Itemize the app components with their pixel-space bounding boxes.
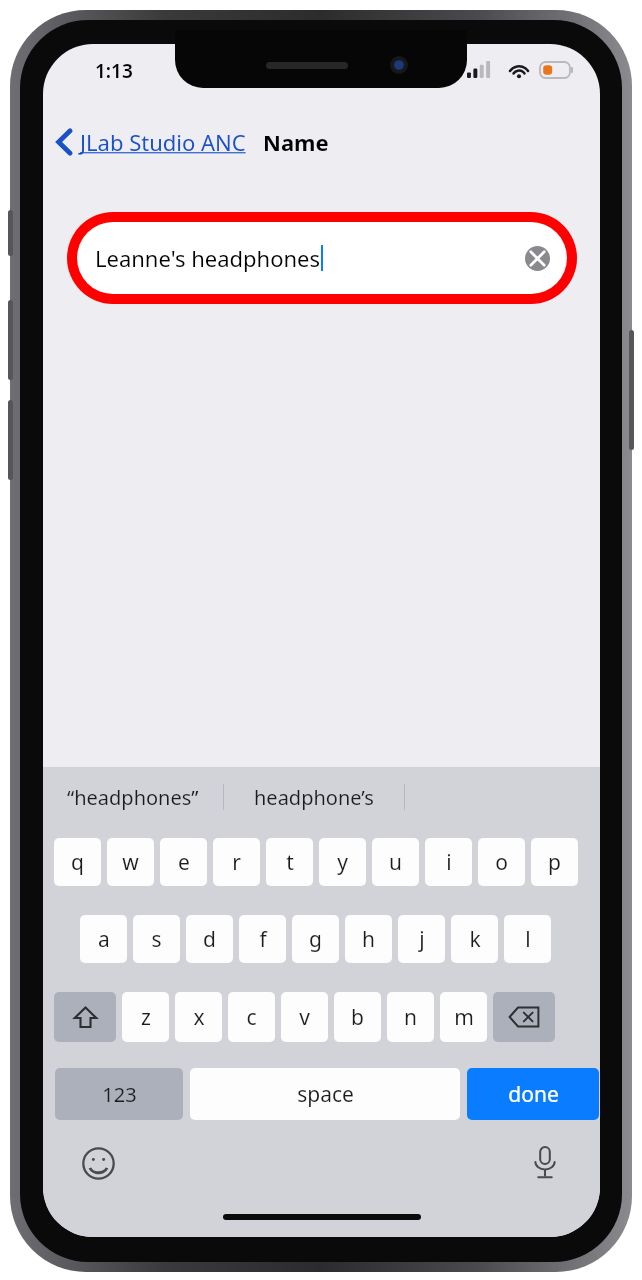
staticText: m [454,1003,474,1032]
staticText: j [419,925,425,954]
staticText: a [98,925,110,954]
button[interactable]: i [425,838,472,886]
staticText: n [404,1003,417,1032]
button[interactable]: h [345,915,392,963]
button[interactable]: q [54,838,101,886]
staticText: h [362,925,375,954]
staticText: p [548,848,561,877]
staticText: t [286,848,294,877]
button[interactable]: d [186,915,233,963]
staticText: headphone’s [254,784,374,811]
staticText: JLab Studio ANC [80,127,246,157]
button[interactable]: “headphones” [43,767,223,827]
button[interactable]: u [372,838,419,886]
button[interactable]: j [398,915,445,963]
button[interactable]: x [175,992,222,1042]
button[interactable]: m [440,992,487,1042]
staticText: 123 [102,1081,137,1108]
button[interactable]: e [160,838,207,886]
staticText: w [122,848,139,877]
button[interactable]: z [122,992,169,1042]
staticText: r [232,848,241,877]
staticText: f [259,925,267,954]
staticText: Name [263,127,329,157]
button[interactable]: a [80,915,127,963]
staticText: q [71,848,84,877]
button[interactable]: done [467,1068,599,1120]
staticText: o [495,848,508,877]
button[interactable]: p [531,838,578,886]
staticText: v [299,1003,310,1032]
button[interactable]: headphone’s [224,767,404,827]
button[interactable]: Clear text [521,242,553,274]
staticText: b [351,1003,364,1032]
button[interactable]: t [266,838,313,886]
button[interactable]: 123 [55,1068,183,1120]
staticText: Leanne's headphones [95,243,321,273]
staticText: done [508,1080,559,1109]
staticText: k [469,925,481,954]
staticText: 1:13 [95,58,133,84]
staticText: d [203,925,216,954]
button[interactable]: space [190,1068,460,1120]
button[interactable]: Leanne's headphones [77,222,567,294]
button[interactable]: o [478,838,525,886]
staticText: “headphones” [67,784,199,811]
staticText: s [151,925,162,954]
staticText: space [297,1080,354,1109]
button[interactable]: f [239,915,286,963]
button[interactable]: y [319,838,366,886]
button[interactable]: v [281,992,328,1042]
button[interactable]: Emoji [77,1142,119,1184]
button[interactable]: b [334,992,381,1042]
button[interactable]: r [213,838,260,886]
staticText: e [178,848,190,877]
button[interactable]: n [387,992,434,1042]
staticText: l [525,925,531,954]
button[interactable]: g [292,915,339,963]
button[interactable]: s [133,915,180,963]
button[interactable]: Shift [54,992,116,1042]
button[interactable]: Backspace [493,992,555,1042]
button[interactable]: c [228,992,275,1042]
staticText: x [193,1003,205,1032]
button[interactable]: JLab Studio ANC [57,127,246,157]
staticText: y [337,848,348,877]
staticText: g [309,925,322,954]
button[interactable]: k [451,915,498,963]
staticText: z [141,1003,151,1032]
staticText: c [246,1003,257,1032]
button[interactable]: Dictation [524,1142,566,1184]
button[interactable]: w [107,838,154,886]
button[interactable]: l [504,915,551,963]
staticText: u [389,848,402,877]
staticText: i [446,848,452,877]
